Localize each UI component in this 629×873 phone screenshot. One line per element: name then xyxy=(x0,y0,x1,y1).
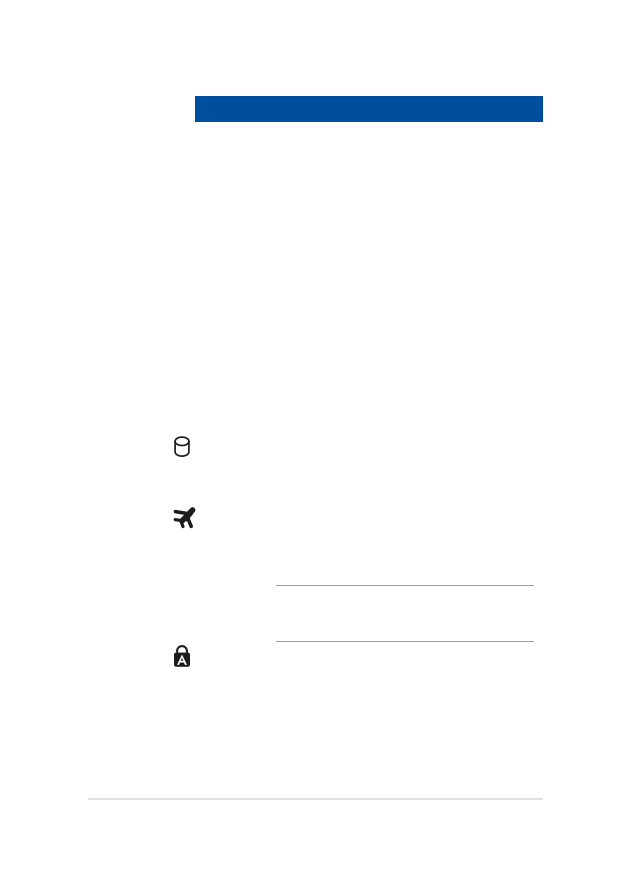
button[interactable]: Caps Lock xyxy=(170,629,534,685)
button[interactable]: Airplane Mode xyxy=(170,489,534,545)
button[interactable]: Storage xyxy=(170,417,534,473)
